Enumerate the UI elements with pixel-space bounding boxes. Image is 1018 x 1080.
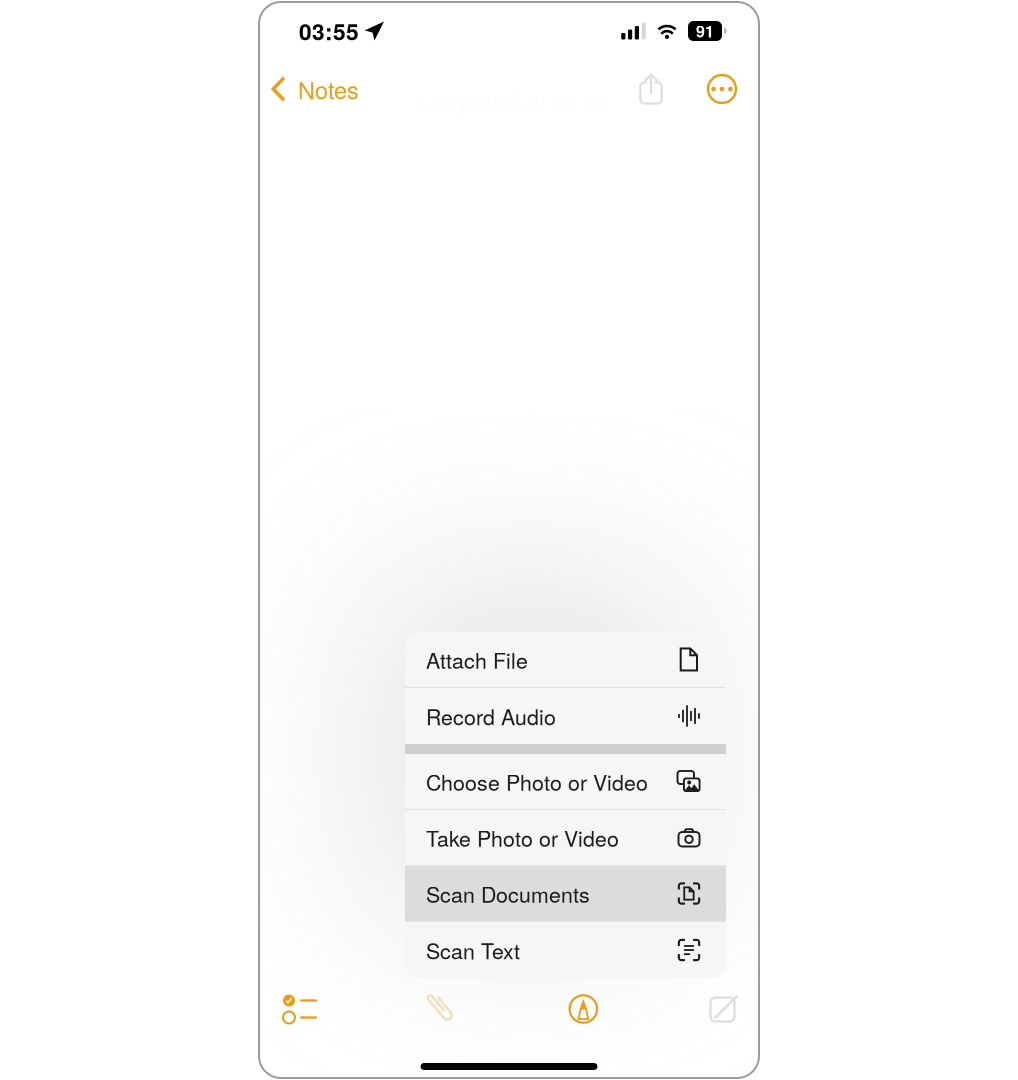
- staticText: Choose Photo or Video: [426, 766, 648, 797]
- button[interactable]: Scan Text: [405, 922, 726, 978]
- button[interactable]: More options: [700, 65, 744, 113]
- staticText: 03:55: [299, 15, 359, 47]
- button[interactable]: Share: [628, 65, 674, 113]
- button[interactable]: Checklist: [276, 985, 324, 1033]
- button[interactable]: Choose Photo or Video: [405, 754, 726, 810]
- staticText: 91: [696, 19, 714, 42]
- staticText: Scan Text: [426, 935, 520, 965]
- button[interactable]: Attach File: [405, 632, 726, 688]
- button[interactable]: Notes: [265, 65, 365, 113]
- staticText: Take Photo or Video: [426, 822, 619, 853]
- button[interactable]: Attach: [418, 985, 466, 1033]
- button[interactable]: Markup: [559, 985, 607, 1033]
- staticText: Record Audio: [426, 701, 556, 731]
- staticText: Notes: [298, 72, 359, 106]
- button[interactable]: Record Audio: [405, 688, 726, 744]
- staticText: Attach File: [426, 644, 528, 675]
- button[interactable]: Take Photo or Video: [405, 810, 726, 866]
- staticText: Scan Documents: [426, 878, 590, 909]
- button[interactable]: New note: [701, 985, 749, 1033]
- button[interactable]: Scan Documents: [405, 866, 726, 922]
